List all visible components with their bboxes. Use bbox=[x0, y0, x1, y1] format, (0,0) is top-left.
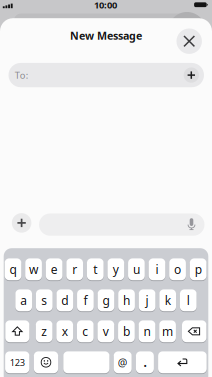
staticText: To: bbox=[15, 69, 29, 81]
button[interactable]: s bbox=[36, 289, 53, 311]
button[interactable] bbox=[39, 213, 204, 236]
button[interactable]: v bbox=[97, 320, 114, 342]
button[interactable]: m bbox=[159, 320, 176, 342]
button[interactable] bbox=[63, 351, 109, 373]
staticText: i bbox=[155, 261, 158, 277]
staticText: . bbox=[143, 354, 146, 370]
button[interactable]: d bbox=[56, 289, 73, 311]
staticText: 10:00 bbox=[94, 0, 117, 11]
staticText: n bbox=[143, 323, 150, 339]
staticText: l bbox=[187, 292, 190, 308]
staticText: h bbox=[123, 292, 130, 308]
button[interactable]: @ bbox=[114, 351, 132, 373]
staticText: f bbox=[83, 292, 87, 308]
button[interactable]: b bbox=[118, 320, 135, 342]
button[interactable]: e bbox=[46, 258, 62, 280]
staticText: s bbox=[41, 292, 47, 308]
staticText: w bbox=[29, 261, 38, 277]
button[interactable]: f bbox=[77, 289, 94, 311]
staticText: g bbox=[102, 292, 109, 308]
staticText: m bbox=[162, 323, 173, 339]
staticText: 123 bbox=[10, 356, 25, 368]
button[interactable]: k bbox=[159, 289, 176, 311]
button[interactable]: To: bbox=[8, 63, 204, 87]
staticText: v bbox=[103, 323, 109, 339]
button[interactable]: u bbox=[128, 258, 145, 280]
staticText: c bbox=[82, 323, 88, 339]
staticText: z bbox=[41, 323, 47, 339]
staticText: r bbox=[72, 261, 77, 277]
staticText: a bbox=[20, 292, 27, 308]
staticText: u bbox=[133, 261, 140, 277]
staticText: q bbox=[9, 261, 16, 277]
button[interactable]: . bbox=[136, 351, 154, 373]
button[interactable]: q bbox=[5, 258, 21, 280]
staticText: k bbox=[165, 292, 171, 308]
button[interactable] bbox=[182, 320, 206, 342]
button[interactable]: a bbox=[15, 289, 32, 311]
button[interactable]: 123 bbox=[5, 351, 29, 373]
staticText: o bbox=[174, 261, 181, 277]
staticText: y bbox=[113, 261, 119, 277]
button[interactable] bbox=[184, 67, 199, 83]
staticText: e bbox=[51, 261, 58, 277]
staticText: t bbox=[93, 261, 97, 277]
button[interactable]: w bbox=[25, 258, 42, 280]
button[interactable]: h bbox=[118, 289, 135, 311]
button[interactable] bbox=[158, 351, 207, 373]
button[interactable]: y bbox=[107, 258, 124, 280]
button[interactable]: t bbox=[87, 258, 104, 280]
button[interactable]: l bbox=[180, 289, 197, 311]
button[interactable] bbox=[12, 213, 31, 233]
button[interactable]: i bbox=[149, 258, 165, 280]
button[interactable]: x bbox=[56, 320, 73, 342]
staticText: @ bbox=[118, 355, 128, 369]
button[interactable]: p bbox=[190, 258, 206, 280]
button[interactable]: n bbox=[139, 320, 155, 342]
staticText: d bbox=[61, 292, 68, 308]
button[interactable] bbox=[34, 351, 58, 373]
button[interactable]: g bbox=[98, 289, 114, 311]
button[interactable]: j bbox=[139, 289, 155, 311]
button[interactable] bbox=[5, 320, 29, 342]
button[interactable]: o bbox=[169, 258, 186, 280]
button[interactable] bbox=[176, 28, 202, 54]
staticText: New Message bbox=[70, 28, 142, 43]
button[interactable]: z bbox=[36, 320, 52, 342]
staticText: b bbox=[123, 323, 130, 339]
staticText: j bbox=[146, 292, 149, 308]
button[interactable] bbox=[184, 218, 198, 232]
button[interactable]: r bbox=[66, 258, 83, 280]
staticText: p bbox=[195, 261, 202, 277]
staticText: x bbox=[62, 323, 68, 339]
button[interactable]: c bbox=[77, 320, 94, 342]
